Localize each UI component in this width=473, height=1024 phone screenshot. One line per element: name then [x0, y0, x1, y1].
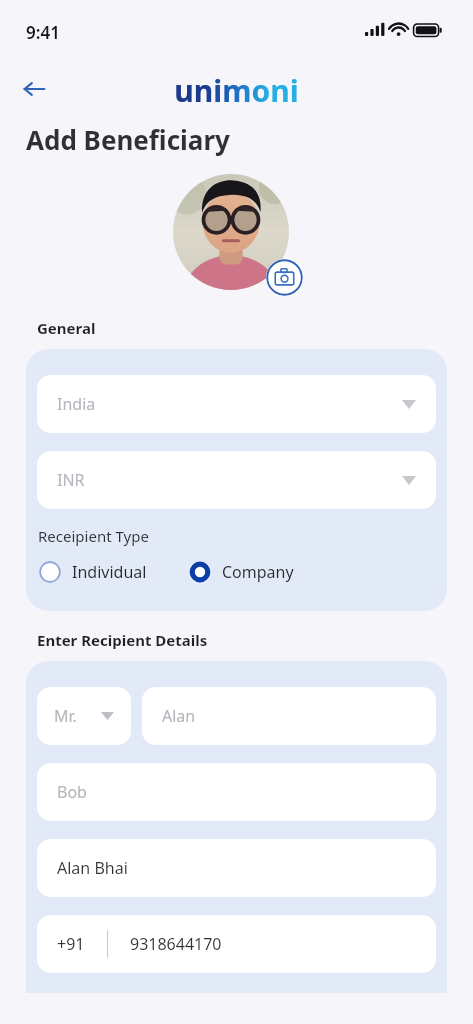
staticText: Enter Recipient Details [37, 630, 208, 650]
button[interactable]: Company [187, 559, 296, 585]
button[interactable]: India [37, 375, 436, 433]
staticText: Alan [162, 705, 196, 727]
staticText: Individual [72, 561, 147, 583]
staticText: Mr. [54, 705, 77, 727]
staticText: India [57, 393, 96, 415]
button[interactable]: Mr. [37, 687, 131, 745]
staticText: Alan Bhai [57, 857, 128, 879]
button[interactable]: Individual [37, 559, 149, 585]
staticText: unimoni [174, 70, 299, 111]
button[interactable]: INR [37, 451, 436, 509]
button[interactable]: Profile photo [173, 174, 289, 290]
staticText: Bob [57, 781, 87, 803]
button[interactable]: Back [12, 67, 56, 111]
staticText: General [37, 318, 96, 338]
staticText: +91 [57, 933, 85, 955]
button[interactable]: Alan [142, 687, 436, 745]
staticText: Add Beneficiary [26, 122, 230, 157]
staticText: Company [222, 561, 294, 583]
button[interactable]: Alan Bhai [37, 839, 436, 897]
staticText: Receipient Type [38, 526, 149, 546]
button[interactable]: +91 [37, 915, 436, 973]
staticText: 9318644170 [130, 933, 222, 955]
button[interactable]: Bob [37, 763, 436, 821]
staticText: INR [57, 469, 85, 491]
staticText: 9:41 [26, 21, 60, 44]
button[interactable]: Change photo [266, 259, 303, 296]
